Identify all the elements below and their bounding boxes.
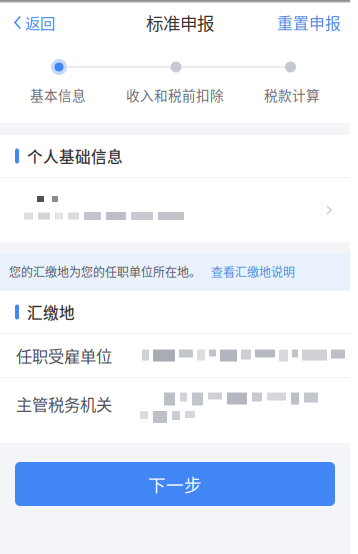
staticText: 您的汇缴地为您的任职单位所在地。 [9,263,201,280]
staticText: 基本信息 [30,85,86,105]
button[interactable] [0,178,350,242]
staticText: 返回 [25,11,55,34]
staticText: 税款计算 [264,85,320,105]
button[interactable]: 返回 [0,3,69,42]
staticText: 标准申报 [146,10,214,35]
staticText: 收入和税前扣除 [126,85,224,105]
button[interactable]: 查看汇缴地说明 [201,253,301,289]
staticText: 个人基础信息 [27,145,123,167]
staticText: 下一步 [148,471,202,497]
staticText: 重置申报 [277,11,341,34]
staticText: 主管税务机关 [16,392,112,416]
button[interactable]: 下一步 [15,462,335,506]
staticText: 查看汇缴地说明 [211,263,295,280]
staticText: 汇缴地 [27,301,75,323]
button[interactable]: 重置申报 [263,3,350,42]
staticText: 任职受雇单位 [16,344,112,367]
